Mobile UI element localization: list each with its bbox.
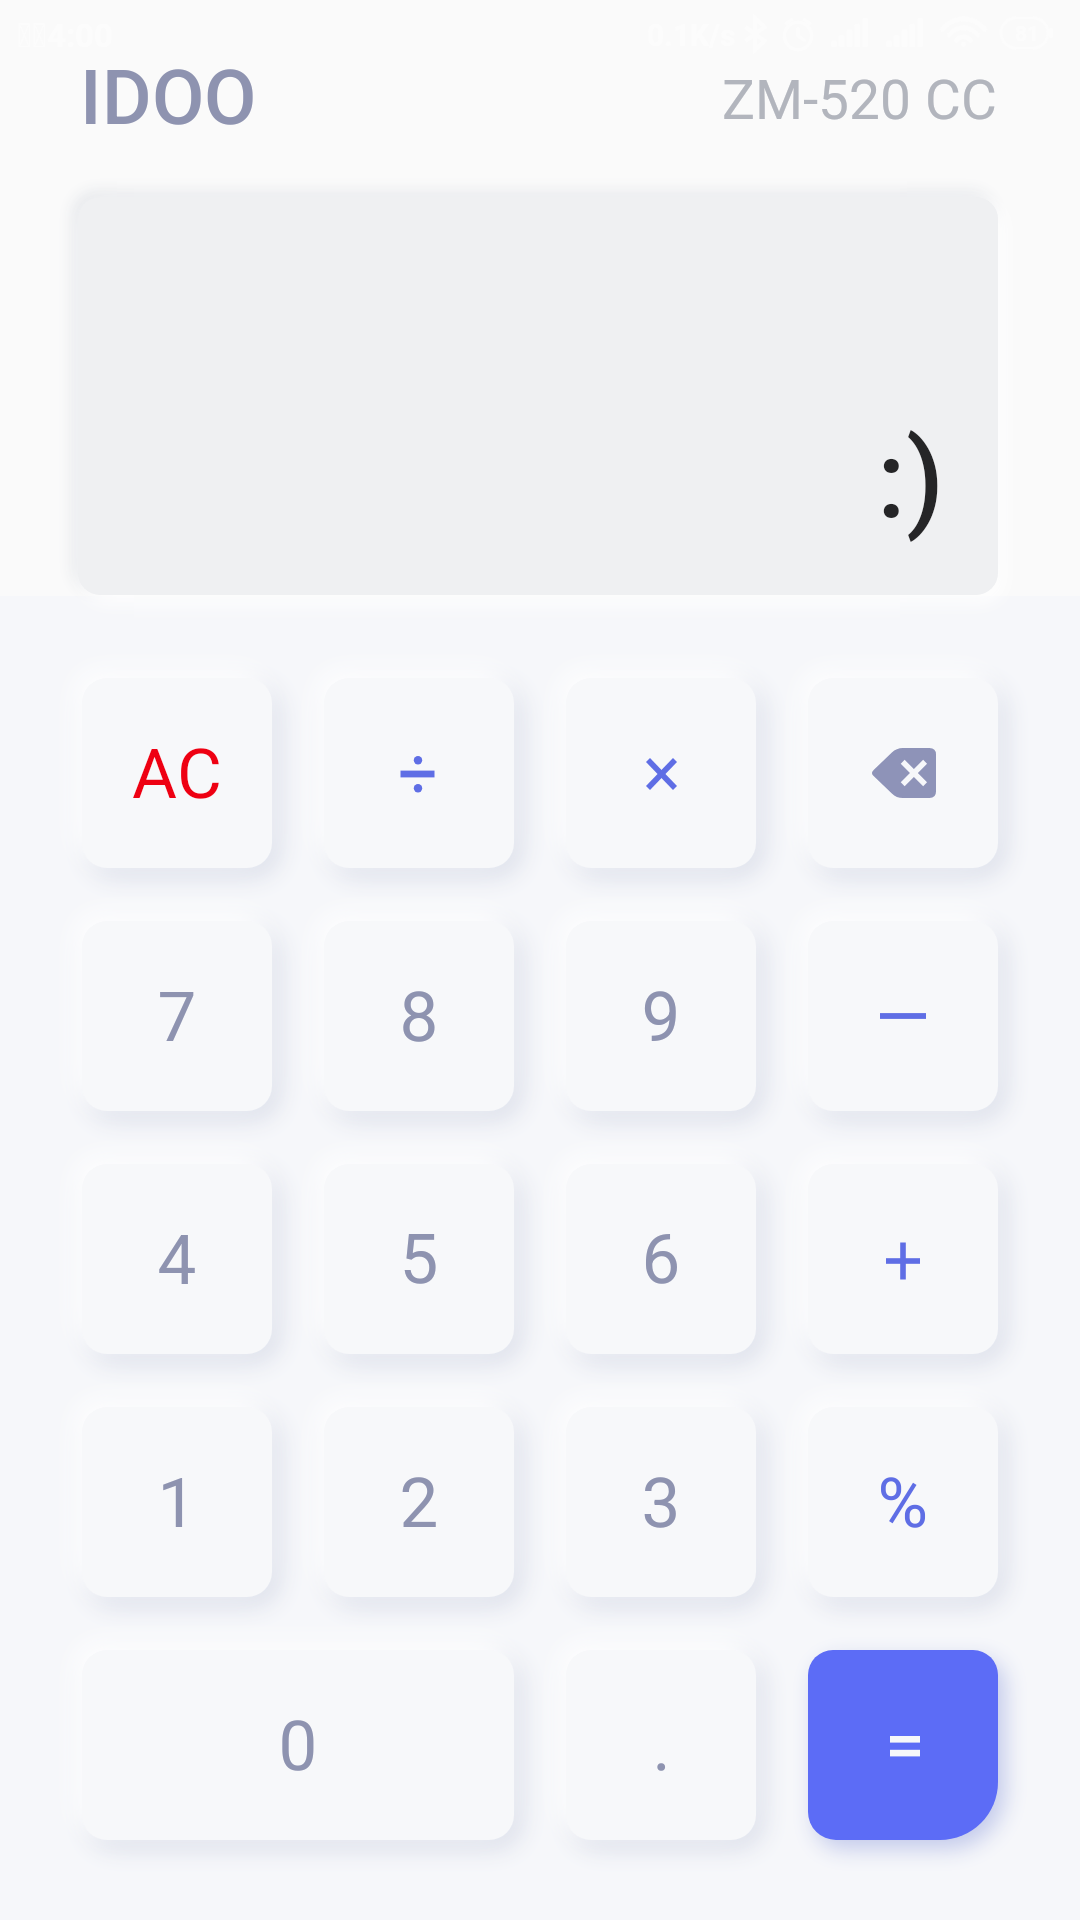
button[interactable]: 6 (566, 1164, 756, 1354)
button[interactable]: 4 (82, 1164, 272, 1354)
button[interactable]: Plus (808, 1164, 998, 1354)
button[interactable]: Percent (808, 1407, 998, 1597)
button[interactable]: 9 (566, 921, 756, 1111)
button[interactable]: 2 (324, 1407, 514, 1597)
button[interactable]: Zero (82, 1650, 514, 1840)
button[interactable]: Multiply (566, 678, 756, 868)
button[interactable]: 7 (82, 921, 272, 1111)
button[interactable]: All clear (82, 678, 272, 868)
button[interactable]: Divide (324, 678, 514, 868)
button[interactable]: 8 (324, 921, 514, 1111)
button[interactable]: 1 (82, 1407, 272, 1597)
button[interactable]: Minus (808, 921, 998, 1111)
button[interactable]: Backspace (808, 678, 998, 868)
button[interactable]: 3 (566, 1407, 756, 1597)
button[interactable]: Equals (808, 1650, 998, 1840)
button[interactable]: . (566, 1650, 756, 1840)
button[interactable]: 5 (324, 1164, 514, 1354)
